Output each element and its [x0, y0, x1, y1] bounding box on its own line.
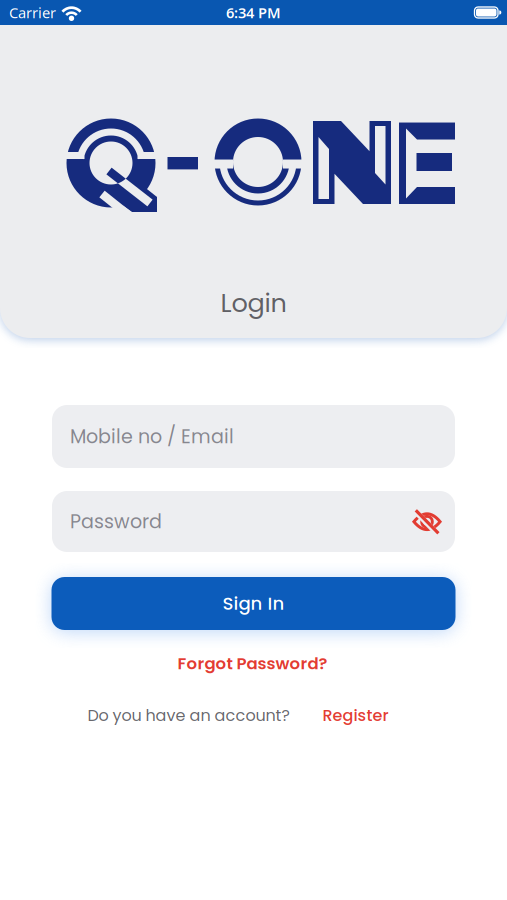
staticText: Password	[70, 508, 162, 535]
staticText: Forgot Password?	[177, 652, 327, 675]
button[interactable]: Sign In	[51, 577, 455, 630]
staticText: Do you have an account?	[88, 704, 290, 727]
staticText: 6:34 PM	[226, 3, 281, 22]
staticText: Login	[220, 285, 286, 321]
staticText: Register	[322, 704, 388, 727]
staticText: Carrier	[9, 3, 56, 22]
staticText: Mobile no / Email	[70, 423, 234, 450]
staticText: Sign In	[222, 591, 284, 616]
button[interactable]: Register	[322, 704, 388, 727]
button[interactable]: Forgot Password?	[177, 652, 327, 675]
button[interactable]: Show password	[413, 508, 455, 534]
